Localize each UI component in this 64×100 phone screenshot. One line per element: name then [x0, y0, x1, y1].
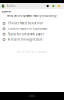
- button[interactable]: Current issues in economics: [0, 26, 64, 31]
- button[interactable]: Bookmark: [45, 5, 50, 7]
- staticText: Choices faced by a senior: [8, 21, 43, 25]
- staticText: Audio: [7, 4, 16, 8]
- staticText: What are the speakers mainly discussing?: [7, 14, 57, 17]
- button[interactable]: A recent biology lecture: [0, 37, 64, 42]
- button[interactable]: Topics for a research paper: [0, 31, 64, 37]
- button[interactable]: Audio settings: [50, 5, 56, 7]
- staticText: A recent biology lecture: [8, 38, 43, 41]
- button[interactable]: More: [56, 5, 62, 7]
- button[interactable]: Choices faced by a senior: [0, 21, 64, 26]
- staticText: Topics for a research paper: [8, 32, 44, 36]
- staticText: Question 1: [1, 10, 12, 13]
- staticText: Current issues in economics: [8, 27, 47, 30]
- button[interactable]: App: [0, 4, 5, 8]
- staticText: Select the best answer: [16, 50, 47, 54]
